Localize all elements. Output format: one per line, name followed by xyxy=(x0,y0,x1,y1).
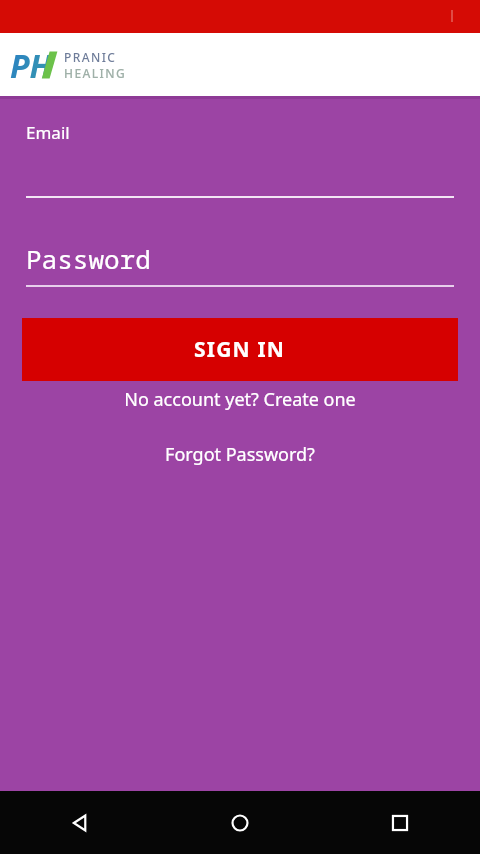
button[interactable]: Forgot Password? xyxy=(0,439,480,469)
staticText: No account yet? Create one xyxy=(124,387,356,412)
staticText: PH xyxy=(10,44,52,86)
button[interactable] xyxy=(26,235,454,287)
staticText: Forgot Password? xyxy=(165,442,315,467)
button[interactable]: No account yet? Create one xyxy=(0,384,480,414)
staticText: HEALING xyxy=(64,65,127,81)
button[interactable]: Back xyxy=(0,791,160,854)
staticText: PRANIC xyxy=(64,49,117,65)
staticText: Email xyxy=(26,121,70,144)
button[interactable] xyxy=(26,113,454,198)
button[interactable]: Recent apps xyxy=(320,791,480,854)
staticText: Password xyxy=(26,241,151,276)
button[interactable]: Home xyxy=(160,791,320,854)
staticText: SIGN IN xyxy=(194,335,286,364)
button[interactable]: SIGN IN xyxy=(22,318,458,381)
